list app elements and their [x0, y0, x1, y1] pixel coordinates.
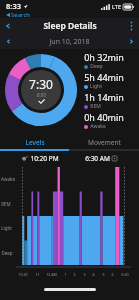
staticText: Sleep Details — [43, 20, 97, 32]
button[interactable]: Next day — [123, 34, 139, 49]
staticText: 10:20 — [18, 272, 28, 277]
button[interactable]: Movement — [69, 135, 139, 149]
staticText: 2 — [73, 272, 76, 277]
button[interactable]: Back — [0, 18, 16, 34]
staticText: Awake — [90, 123, 106, 130]
staticText: 4 — [92, 272, 95, 277]
staticText: Search — [11, 11, 30, 18]
staticText: REM — [90, 103, 101, 110]
staticText: Awake — [1, 176, 15, 182]
button[interactable]: Previous day — [0, 34, 16, 49]
staticText: 6 — [111, 272, 114, 277]
staticText: 1h 14min — [84, 91, 124, 103]
staticText: 5h 44min — [84, 71, 124, 83]
staticText: 6:30 — [121, 272, 129, 277]
staticText: 10:20 PM — [30, 154, 59, 163]
staticText: 3 — [83, 272, 86, 277]
button[interactable]: More options — [123, 18, 139, 34]
staticText: 6:30 AM — [85, 154, 110, 163]
staticText: LTE — [112, 3, 121, 10]
staticText: Deep — [1, 250, 13, 256]
staticText: 0h 40min — [84, 111, 124, 123]
staticText: 8:33 — [6, 1, 21, 11]
staticText: 7:30 — [29, 76, 53, 92]
staticText: 1 — [64, 272, 67, 277]
staticText: 5 — [102, 272, 105, 277]
staticText: Light — [1, 225, 12, 231]
staticText: Deep — [90, 63, 103, 70]
staticText: Levels — [25, 138, 45, 147]
staticText: 11 — [35, 272, 40, 277]
staticText: Jun 10, 2018 — [49, 37, 90, 47]
staticText: 12 AM — [46, 272, 57, 277]
staticText: REM — [1, 201, 11, 207]
staticText: 0h 32min — [84, 51, 124, 63]
staticText: Light — [90, 83, 102, 90]
staticText: 8:00 — [37, 92, 46, 98]
button[interactable]: Levels — [0, 135, 69, 149]
staticText: Movement — [88, 138, 121, 147]
